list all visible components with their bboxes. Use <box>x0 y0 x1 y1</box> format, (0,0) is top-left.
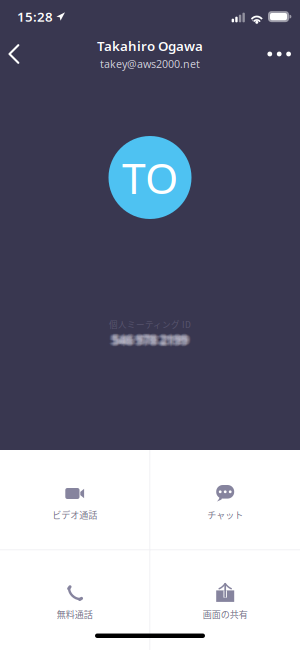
staticText: 546 978 2199 <box>112 330 188 346</box>
staticText: TO <box>122 149 178 206</box>
staticText: 546 978 2199 <box>111 331 187 347</box>
staticText: 個人ミーティング ID <box>109 318 191 330</box>
staticText: 15:28 <box>17 8 53 25</box>
staticText: 546 978 2199 <box>111 333 187 349</box>
staticText: 546 978 2199 <box>116 332 192 348</box>
staticText: Takahiro Ogawa <box>97 37 203 55</box>
staticText: 546 978 2199 <box>114 331 190 347</box>
staticText: 546 978 2199 <box>108 332 184 348</box>
button[interactable]: Back <box>0 34 34 74</box>
staticText: ビデオ通話 <box>52 508 97 521</box>
button[interactable]: Free call <box>0 550 150 650</box>
staticText: 546 978 2199 <box>110 331 186 347</box>
button[interactable]: More options <box>253 38 300 70</box>
button[interactable]: Screen share <box>150 550 300 650</box>
button[interactable]: Chat <box>150 450 300 550</box>
staticText: 546 978 2199 <box>110 333 186 349</box>
staticText: チャット <box>207 508 243 521</box>
staticText: 画面の共有 <box>203 607 248 620</box>
staticText: 546 978 2199 <box>112 334 188 350</box>
staticText: 546 978 2199 <box>112 331 188 347</box>
staticText: 546 978 2199 <box>113 332 189 348</box>
staticText: 546 978 2199 <box>113 331 189 347</box>
staticText: 546 978 2199 <box>112 332 188 348</box>
staticText: 546 978 2199 <box>114 333 190 349</box>
staticText: 546 978 2199 <box>113 333 189 349</box>
staticText: 無料通話 <box>57 607 93 620</box>
button[interactable]: Video call <box>0 450 150 550</box>
staticText: takey@aws2000.net <box>100 57 200 71</box>
staticText: 546 978 2199 <box>114 332 190 348</box>
staticText: 546 978 2199 <box>112 333 188 349</box>
staticText: 546 978 2199 <box>110 332 186 348</box>
staticText: 546 978 2199 <box>111 332 187 348</box>
